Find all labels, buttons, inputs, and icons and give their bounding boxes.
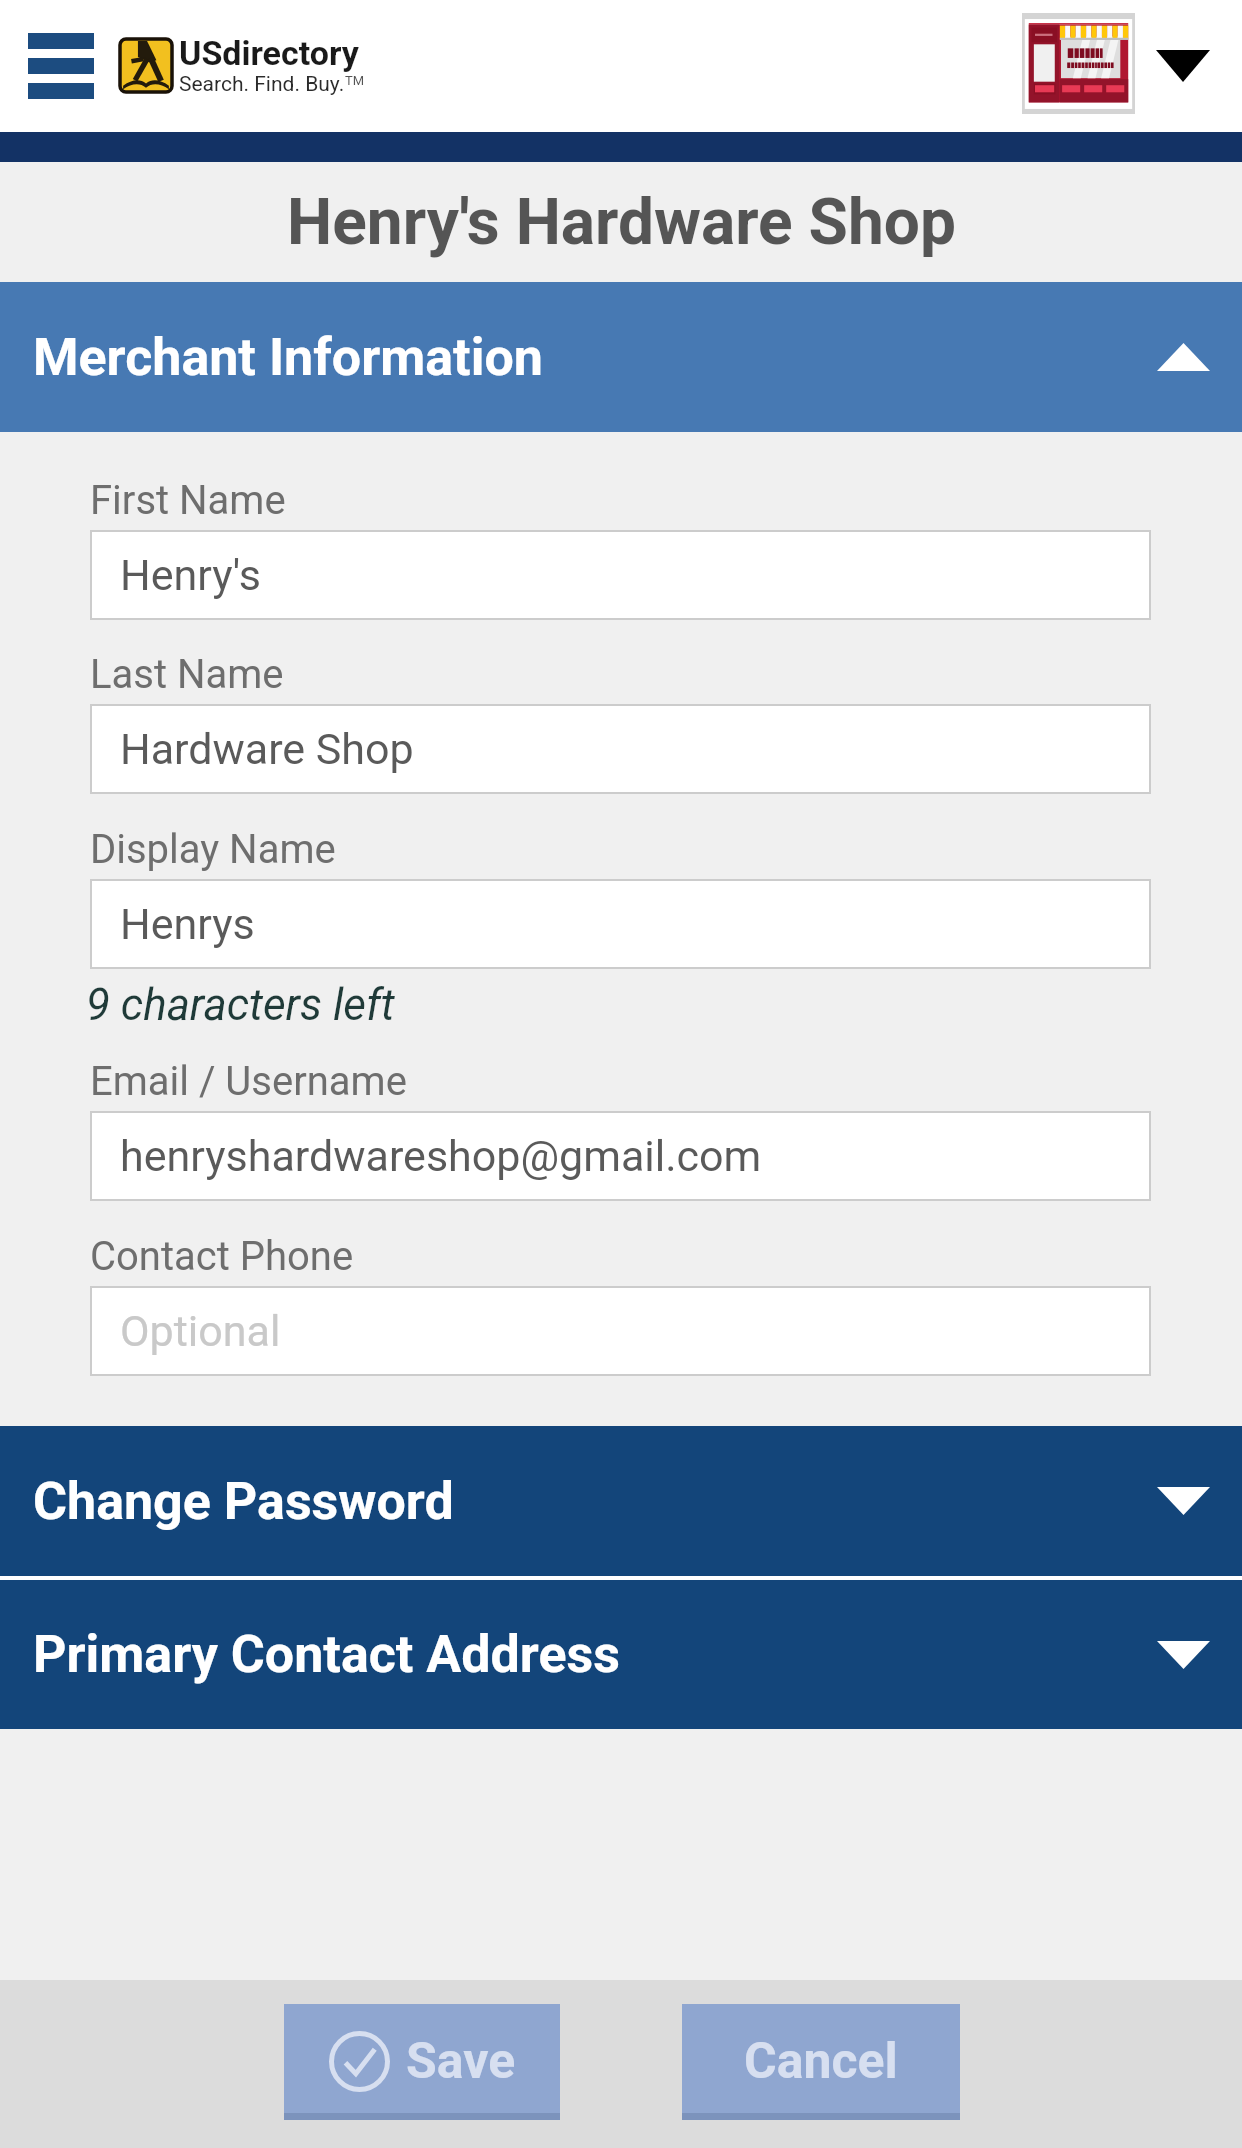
- button[interactable]: Henry's: [90, 530, 1151, 620]
- button[interactable]: Cancel: [682, 2004, 960, 2113]
- staticText: Primary Contact Address: [33, 1624, 620, 1685]
- staticText: Email / Username: [90, 1058, 407, 1105]
- staticText: TM: [345, 73, 365, 88]
- staticText: Henry's Hardware Shop: [287, 185, 956, 260]
- staticText: Hardware Shop: [120, 724, 414, 774]
- button[interactable]: Menu: [28, 33, 94, 99]
- staticText: Optional: [120, 1306, 281, 1356]
- staticText: First Name: [90, 477, 286, 524]
- button[interactable]: Optional: [90, 1286, 1151, 1376]
- staticText: 9 characters left: [86, 979, 395, 1031]
- staticText: USdirectory: [179, 33, 359, 73]
- button[interactable]: Henrys: [90, 879, 1151, 969]
- button[interactable]: Change Password: [0, 1426, 1242, 1576]
- button[interactable]: Henry's Hardware Store: [1022, 13, 1135, 114]
- staticText: Cancel: [744, 2032, 898, 2091]
- button[interactable]: Primary Contact Address: [0, 1580, 1242, 1729]
- staticText: Henrys: [120, 899, 255, 949]
- button[interactable]: Merchant Information: [0, 282, 1242, 432]
- staticText: henryshardwareshop@gmail.com: [120, 1131, 762, 1181]
- button[interactable]: henryshardwareshop@gmail.com: [90, 1111, 1151, 1201]
- button[interactable]: Expand account menu: [1148, 31, 1218, 101]
- staticText: Last Name: [90, 651, 284, 698]
- staticText: Display Name: [90, 826, 336, 873]
- staticText: Search. Find. Buy.: [179, 72, 345, 97]
- button[interactable]: Save: [284, 2004, 560, 2113]
- staticText: Henry's: [120, 550, 261, 600]
- staticText: Save: [406, 2032, 516, 2091]
- staticText: Contact Phone: [90, 1233, 354, 1280]
- staticText: Change Password: [33, 1471, 454, 1532]
- button[interactable]: Hardware Shop: [90, 704, 1151, 794]
- staticText: Merchant Information: [33, 327, 543, 388]
